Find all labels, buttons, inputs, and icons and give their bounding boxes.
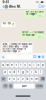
staticText: w bbox=[6, 63, 8, 67]
button[interactable]: g bbox=[21, 70, 25, 75]
button[interactable]: b bbox=[26, 77, 29, 82]
button[interactable]: Back bbox=[1, 4, 4, 9]
staticText: 9:41 bbox=[38, 36, 41, 38]
staticText: l bbox=[40, 70, 41, 74]
button[interactable]: x bbox=[12, 77, 16, 82]
staticText: 9:41 bbox=[3, 0, 9, 4]
staticText: k bbox=[35, 70, 37, 74]
button[interactable]: v bbox=[21, 77, 25, 82]
staticText: q bbox=[2, 63, 4, 67]
button[interactable]: e bbox=[10, 63, 14, 68]
button[interactable]: Camera bbox=[37, 55, 40, 59]
button[interactable]: p bbox=[41, 63, 45, 68]
staticText: ✓✓ bbox=[42, 15, 44, 17]
button[interactable]: ☺ bbox=[9, 84, 13, 89]
staticText: m bbox=[35, 77, 37, 81]
button[interactable]: r bbox=[15, 63, 18, 68]
button[interactable]: Emoji bbox=[33, 55, 36, 59]
button[interactable]: return bbox=[35, 84, 43, 89]
staticText: Perfect — I've booked the usual table bbox=[22, 31, 44, 36]
staticText: n bbox=[31, 77, 33, 81]
staticText: r bbox=[16, 63, 17, 67]
staticText: b bbox=[26, 77, 28, 81]
staticText: ‹ bbox=[2, 3, 4, 10]
staticText: z bbox=[9, 77, 11, 81]
staticText: p bbox=[42, 63, 44, 67]
staticText: o bbox=[37, 63, 39, 67]
staticText: 9:38 bbox=[38, 15, 41, 17]
staticText: i bbox=[34, 63, 35, 67]
staticText: ☺ bbox=[33, 55, 37, 59]
staticText: ψ bbox=[41, 54, 44, 59]
staticText: ⌫ bbox=[41, 77, 44, 81]
staticText: Hey! Are we still on for tonight? bbox=[26, 11, 44, 15]
button[interactable]: 123 bbox=[3, 84, 8, 89]
button[interactable]: u bbox=[28, 63, 31, 68]
button[interactable]: s bbox=[8, 70, 11, 75]
button[interactable]: z bbox=[8, 77, 11, 82]
staticText: x bbox=[13, 77, 15, 81]
button[interactable]: ⇧ bbox=[1, 77, 6, 82]
button[interactable]: f bbox=[17, 70, 20, 75]
staticText: ⇧ bbox=[2, 77, 5, 81]
staticText: 9:40 bbox=[11, 25, 14, 26]
staticText: h bbox=[26, 70, 28, 74]
staticText: f bbox=[18, 70, 19, 74]
button[interactable]: y bbox=[23, 63, 27, 68]
staticText: e bbox=[11, 63, 13, 67]
staticText: ▢ bbox=[38, 4, 41, 9]
staticText: Yes! 7pm 👍 bbox=[2, 22, 14, 25]
staticText: 123 bbox=[4, 85, 7, 87]
button[interactable]: j bbox=[30, 70, 34, 75]
button[interactable]: Voice call bbox=[41, 5, 44, 9]
staticText: g bbox=[22, 70, 24, 74]
button[interactable]: w bbox=[6, 63, 9, 68]
button[interactable]: t bbox=[19, 63, 23, 68]
staticText: Alex M. bbox=[9, 5, 21, 8]
staticText: v bbox=[22, 77, 24, 81]
button[interactable]: d bbox=[12, 70, 16, 75]
staticText: + bbox=[2, 54, 5, 59]
staticText: return bbox=[36, 85, 42, 87]
staticText: j bbox=[31, 70, 32, 74]
button[interactable]: space bbox=[14, 84, 35, 89]
button[interactable]: m bbox=[34, 77, 38, 82]
staticText: space bbox=[22, 85, 27, 87]
staticText: ◉ bbox=[37, 55, 40, 59]
staticText: ıll bbox=[36, 0, 39, 4]
staticText: t bbox=[20, 63, 21, 67]
button[interactable]: Contact info bbox=[4, 5, 21, 9]
staticText: Great, I'll bring the snacks and some dr… bbox=[2, 43, 31, 53]
staticText: d bbox=[13, 70, 15, 74]
button[interactable]: Record voice message bbox=[41, 55, 44, 59]
staticText: y bbox=[24, 63, 26, 67]
button[interactable]: h bbox=[26, 70, 29, 75]
button[interactable]: Video call bbox=[38, 5, 41, 9]
button[interactable]: n bbox=[30, 77, 34, 82]
staticText: ✆ bbox=[41, 5, 44, 9]
button[interactable]: c bbox=[17, 77, 20, 82]
staticText: ◞ bbox=[39, 0, 40, 4]
button[interactable]: l bbox=[39, 70, 42, 75]
staticText: ✓✓ bbox=[42, 36, 44, 38]
button[interactable]: i bbox=[32, 63, 36, 68]
button[interactable]: a bbox=[3, 70, 7, 75]
staticText: c bbox=[18, 77, 20, 81]
staticText: a bbox=[4, 70, 6, 74]
button[interactable]: ⌫ bbox=[40, 77, 45, 82]
button[interactable]: o bbox=[37, 63, 40, 68]
button[interactable]: Add attachment bbox=[1, 55, 5, 59]
button[interactable]: q bbox=[1, 63, 5, 68]
button[interactable]: k bbox=[34, 70, 38, 75]
staticText: ☺ bbox=[9, 84, 12, 88]
staticText: u bbox=[29, 63, 31, 67]
staticText: s bbox=[9, 70, 10, 74]
